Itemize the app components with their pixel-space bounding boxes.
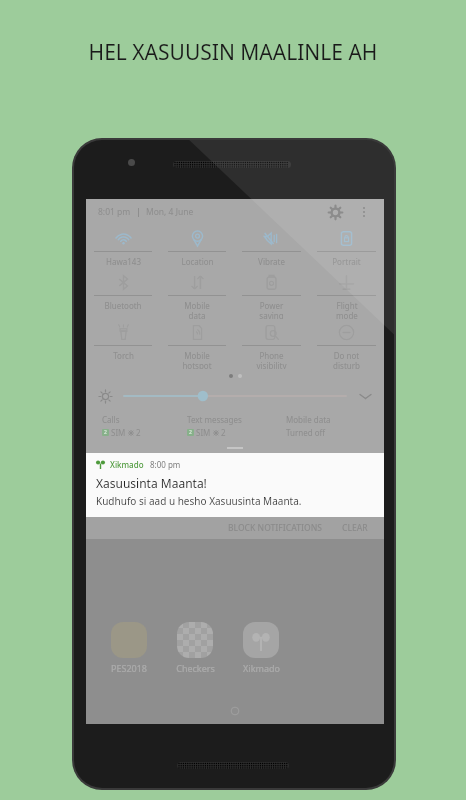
- button[interactable]: Expand: [358, 389, 372, 403]
- staticText: 8:00 pm: [150, 459, 181, 470]
- staticText: Checkers: [176, 662, 215, 674]
- button[interactable]: Mobile data: [160, 269, 234, 319]
- staticText: SIM: [111, 427, 126, 438]
- staticText: Power saving: [259, 300, 284, 319]
- staticText: SIM: [196, 427, 211, 438]
- staticText: |: [136, 206, 141, 218]
- button[interactable]: Hawa143: [86, 225, 160, 269]
- button[interactable]: Phone visibility: [234, 319, 309, 369]
- staticText: Mobile data: [286, 414, 331, 425]
- staticText: Xasuusinta Maanta!: [96, 475, 207, 491]
- staticText: Phone visibility: [256, 350, 287, 369]
- staticText: Text messages: [187, 414, 242, 425]
- button[interactable]: Power saving: [234, 269, 309, 319]
- staticText: CLEAR: [342, 522, 368, 534]
- staticText: Location: [181, 256, 214, 267]
- staticText: Portrait: [332, 256, 361, 267]
- staticText: HEL XASUUSIN MAALINLE AH: [26, 38, 440, 67]
- staticText: Calls: [102, 414, 120, 425]
- button[interactable]: Xikmado: [86, 453, 384, 517]
- button[interactable]: Brightness: [98, 389, 112, 403]
- button[interactable]: Location: [160, 225, 234, 269]
- button[interactable]: BLOCK NOTIFICATIONS: [224, 519, 326, 537]
- staticText: Torch: [113, 350, 134, 361]
- staticText: Kudhufo si aad u hesho Xasuusinta Maanta…: [96, 494, 302, 508]
- staticText: Turned off: [286, 427, 326, 438]
- button[interactable]: Do not disturb: [309, 319, 384, 369]
- staticText: PES2018: [111, 662, 147, 674]
- staticText: BLOCK NOTIFICATIONS: [228, 522, 322, 534]
- button[interactable]: Settings: [326, 203, 344, 221]
- button[interactable]: Portrait: [309, 225, 384, 269]
- staticText: Xikmado: [110, 459, 144, 470]
- staticText: Mobile data: [184, 300, 210, 319]
- staticText: Flight mode: [336, 300, 358, 319]
- staticText: Mobile hotspot: [182, 350, 212, 369]
- button[interactable]: Checkers: [162, 622, 228, 674]
- staticText: 2: [136, 427, 141, 438]
- staticText: 2: [104, 429, 107, 436]
- staticText: Xikmado: [243, 662, 280, 674]
- staticText: Bluetooth: [104, 300, 142, 311]
- button[interactable]: Mobile hotspot: [160, 319, 234, 369]
- staticText: 2: [221, 427, 226, 438]
- staticText: 2: [189, 429, 192, 436]
- button[interactable]: Xikmado: [228, 622, 294, 674]
- button[interactable]: Bluetooth: [86, 269, 160, 319]
- staticText: 8:01 pm: [98, 206, 131, 218]
- button[interactable]: [124, 389, 346, 403]
- button[interactable]: Vibrate: [234, 225, 309, 269]
- button[interactable]: Torch: [86, 319, 160, 369]
- button[interactable]: Flight mode: [309, 269, 384, 319]
- button[interactable]: CLEAR: [338, 519, 372, 537]
- staticText: Do not disturb: [333, 350, 360, 369]
- staticText: Vibrate: [258, 256, 285, 267]
- button[interactable]: PES2018: [96, 622, 162, 674]
- button[interactable]: More options: [356, 204, 372, 220]
- staticText: Hawa143: [106, 256, 141, 267]
- staticText: Mon, 4 June: [146, 206, 194, 218]
